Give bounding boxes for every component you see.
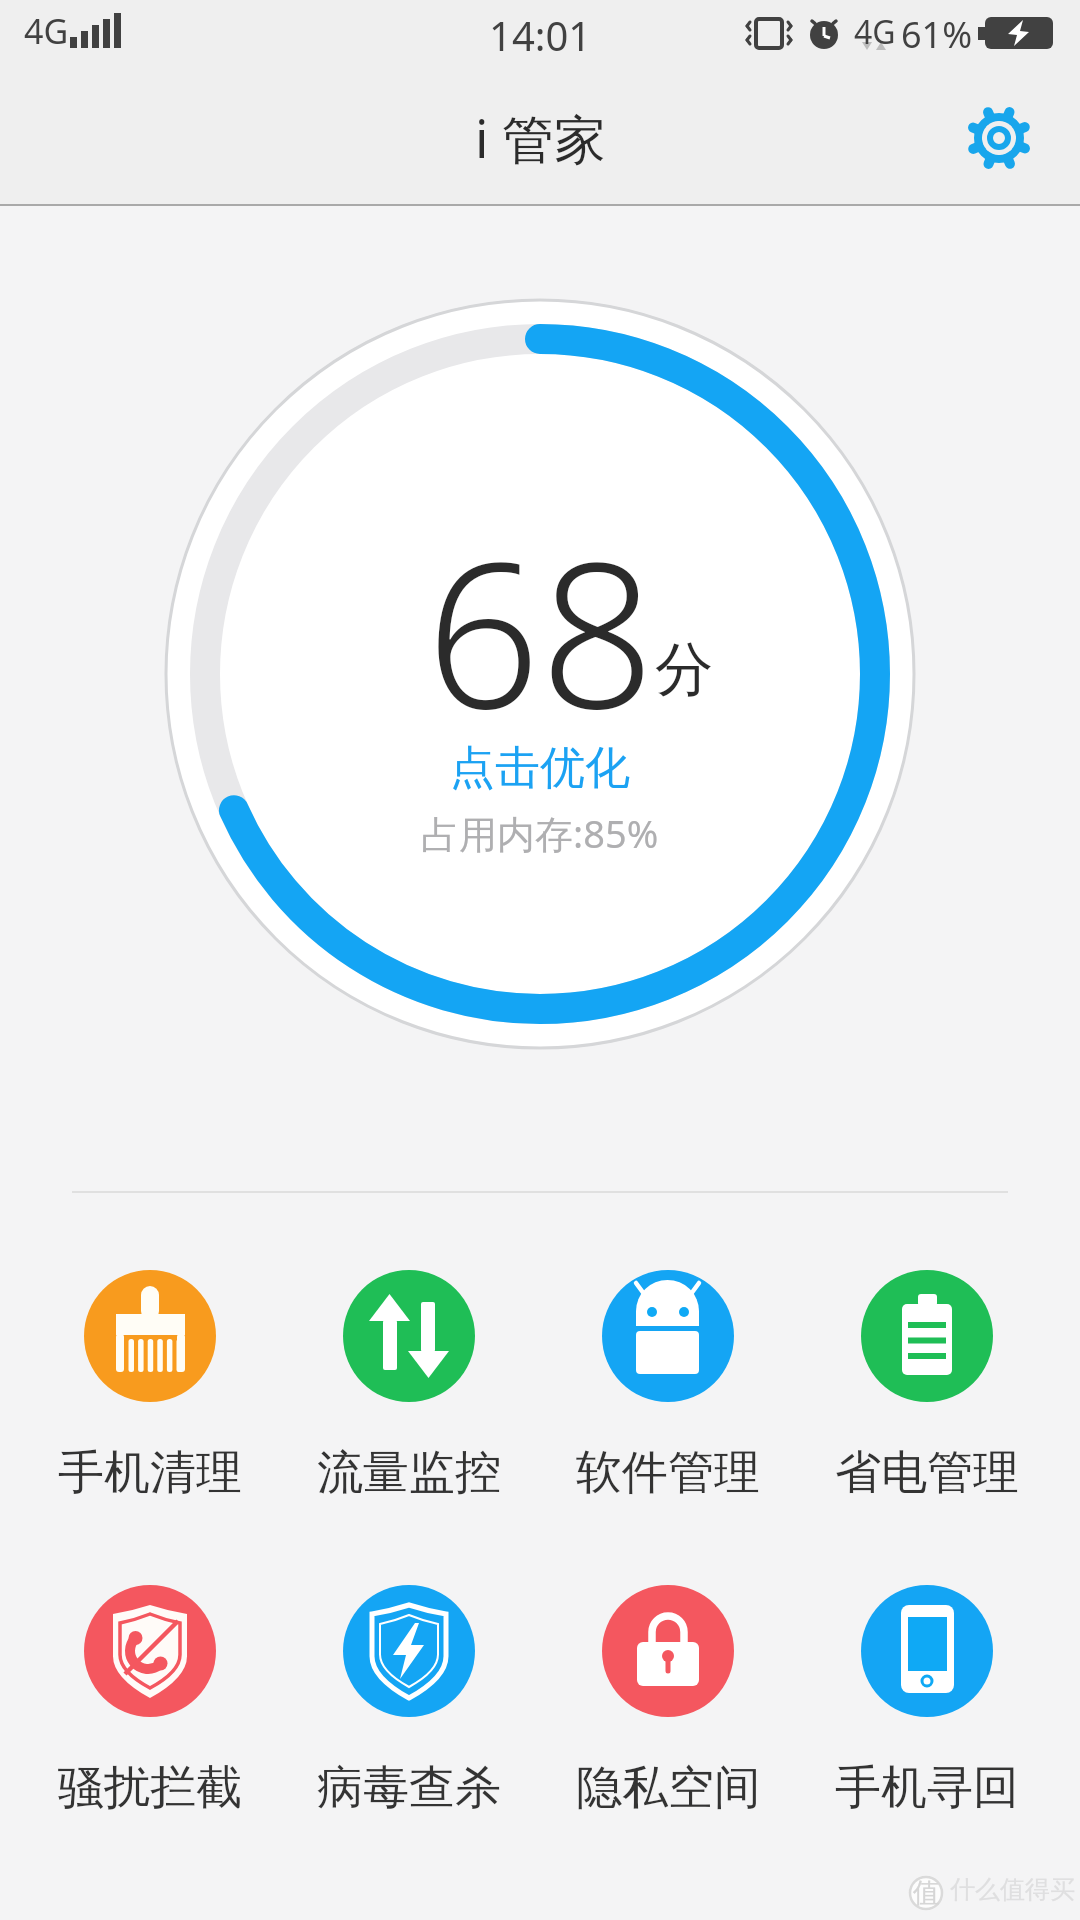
- button[interactable]: 病毒查杀: [289, 1585, 529, 1817]
- button[interactable]: 省电管理: [807, 1270, 1047, 1502]
- staticText: 手机寻回: [835, 1759, 1019, 1817]
- staticText: 省电管理: [835, 1444, 1019, 1502]
- button[interactable]: 骚扰拦截: [30, 1585, 270, 1817]
- button[interactable]: 流量监控: [289, 1270, 529, 1502]
- button[interactable]: [961, 100, 1037, 176]
- staticText: 软件管理: [576, 1444, 760, 1502]
- staticText: 14:01: [489, 8, 592, 62]
- button[interactable]: 手机清理: [30, 1270, 270, 1502]
- button[interactable]: 软件管理: [548, 1270, 788, 1502]
- button[interactable]: [160, 294, 920, 1054]
- staticText: 占用内存:85%: [421, 807, 659, 859]
- staticText: 隐私空间: [576, 1759, 760, 1817]
- staticText: 4G: [24, 8, 69, 54]
- staticText: 什么值得买: [950, 1874, 1075, 1905]
- staticText: i 管家: [475, 102, 606, 173]
- button[interactable]: 隐私空间: [548, 1585, 788, 1817]
- staticText: 4G: [854, 10, 896, 54]
- staticText: 病毒查杀: [317, 1759, 501, 1817]
- button[interactable]: 手机寻回: [807, 1585, 1047, 1817]
- staticText: 61%: [901, 10, 973, 59]
- staticText: 点击优化: [450, 740, 630, 797]
- staticText: 手机清理: [58, 1444, 242, 1502]
- staticText: 骚扰拦截: [58, 1759, 242, 1817]
- staticText: 68: [426, 494, 655, 766]
- staticText: 值: [913, 1876, 940, 1910]
- staticText: 分: [655, 633, 713, 706]
- staticText: 流量监控: [317, 1444, 501, 1502]
